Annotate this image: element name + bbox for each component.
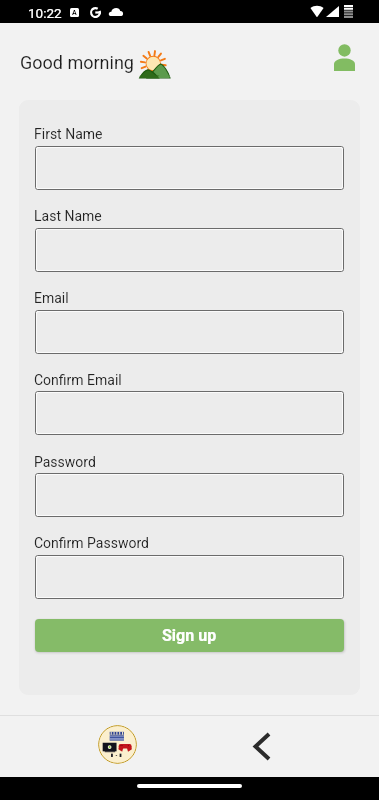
staticText: Confirm Email [34, 372, 122, 388]
button[interactable]: Sign up [35, 619, 344, 652]
staticText: 10:22 [28, 5, 62, 21]
staticText: A [72, 9, 77, 17]
staticText: Good morning [20, 52, 134, 73]
staticText: Email [34, 290, 69, 306]
staticText: Confirm Password [34, 535, 149, 551]
staticText: First Name [34, 126, 103, 142]
button[interactable] [36, 556, 343, 598]
button[interactable] [36, 229, 343, 271]
button[interactable] [36, 392, 343, 434]
button[interactable]: Profile [326, 39, 362, 75]
staticText: Sign up [162, 626, 217, 645]
button[interactable]: Back [244, 728, 280, 764]
staticText: Password [34, 454, 96, 470]
staticText: Last Name [34, 208, 102, 224]
button[interactable]: Open app [98, 725, 137, 764]
button[interactable] [36, 311, 343, 353]
button[interactable] [36, 474, 343, 516]
button[interactable] [36, 147, 343, 189]
